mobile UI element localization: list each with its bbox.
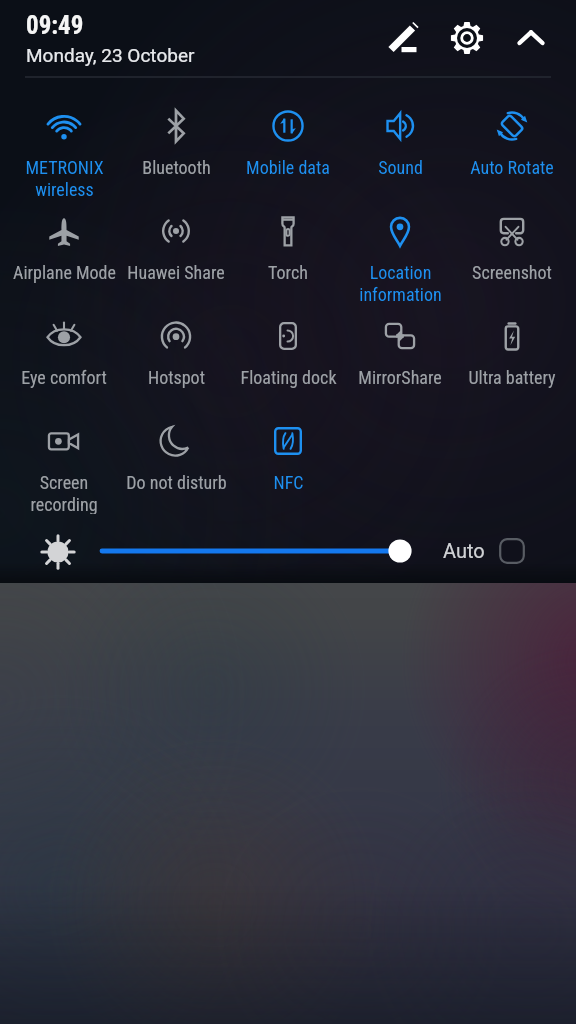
button[interactable]: Ultra battery <box>456 304 568 409</box>
staticText: Eye comfort <box>21 367 107 388</box>
button[interactable]: Screenshot <box>456 199 568 304</box>
button[interactable]: Hotspot <box>120 304 232 409</box>
button[interactable]: Brightness <box>34 528 82 576</box>
button[interactable]: Mobile data <box>232 94 344 199</box>
staticText: Torch <box>268 262 308 283</box>
staticText: Screenshot <box>472 262 552 283</box>
button[interactable]: Eye comfort <box>8 304 120 409</box>
button[interactable]: Auto brightness toggle <box>499 538 525 564</box>
staticText: Ultra battery <box>468 367 556 388</box>
button[interactable]: Do not disturb <box>120 409 232 514</box>
button[interactable]: Settings <box>445 16 489 60</box>
staticText: Screen recording <box>30 472 98 514</box>
staticText: Hotspot <box>148 367 205 388</box>
staticText: NFC <box>273 472 304 493</box>
button[interactable]: Brightness slider <box>96 535 416 567</box>
staticText: Location information <box>359 262 442 304</box>
staticText: Floating dock <box>240 367 337 388</box>
button[interactable]: Location information <box>344 199 456 304</box>
staticText: METRONIX wireless <box>25 157 104 199</box>
staticText: MirrorShare <box>358 367 442 388</box>
staticText: Mobile data <box>246 157 330 178</box>
staticText: Sound <box>378 157 423 178</box>
button[interactable]: Airplane Mode <box>8 199 120 304</box>
staticText: Huawei Share <box>127 262 225 283</box>
button[interactable]: Collapse panel <box>509 16 553 60</box>
staticText: Do not disturb <box>126 472 227 493</box>
button[interactable]: Huawei Share <box>120 199 232 304</box>
staticText: Monday, 23 October <box>26 44 195 66</box>
button[interactable]: Auto Rotate <box>456 94 568 199</box>
staticText: Airplane Mode <box>13 262 116 283</box>
button[interactable]: Bluetooth <box>120 94 232 199</box>
button[interactable]: Edit quick settings <box>380 16 424 60</box>
button[interactable]: Floating dock <box>232 304 344 409</box>
button[interactable]: METRONIX wireless <box>8 94 120 199</box>
staticText: Auto <box>443 539 485 562</box>
button[interactable]: Screen recording <box>8 409 120 514</box>
button[interactable]: MirrorShare <box>344 304 456 409</box>
button[interactable]: Torch <box>232 199 344 304</box>
staticText: Auto Rotate <box>470 157 554 178</box>
button[interactable]: Sound <box>344 94 456 199</box>
staticText: Bluetooth <box>142 157 211 178</box>
button[interactable]: NFC <box>232 409 344 514</box>
staticText: 09:49 <box>26 11 84 40</box>
